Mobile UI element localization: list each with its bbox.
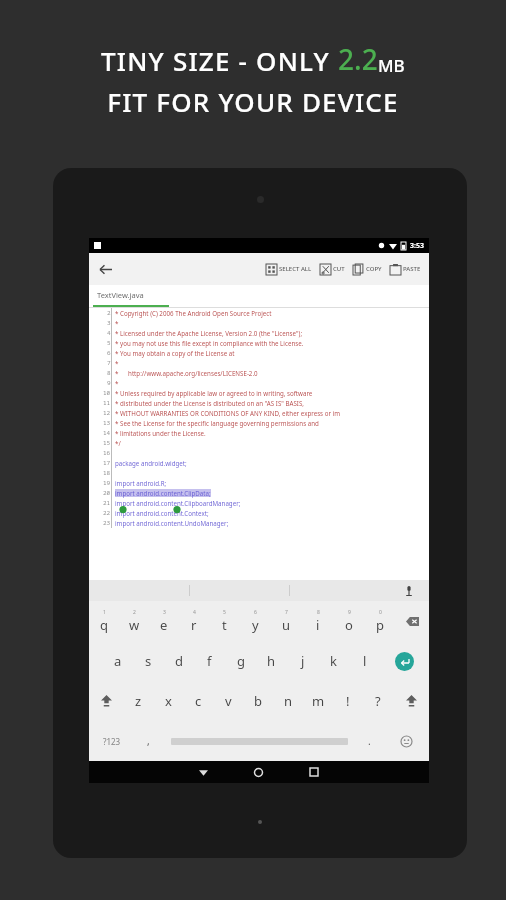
staticText: * distributed under the License is distr… [115, 399, 304, 407]
button[interactable]: Backspace [395, 601, 429, 641]
staticText: FIT FOR YOUR DEVICE [107, 84, 399, 119]
staticText: l [363, 652, 367, 670]
button[interactable]: 3 [149, 601, 179, 641]
button[interactable]: Emoji [384, 721, 429, 761]
button[interactable]: Enter [380, 641, 429, 681]
button[interactable]: 6 [240, 601, 271, 641]
staticText: 9 [348, 609, 351, 616]
staticText: * you may not use this file except in co… [115, 339, 304, 347]
staticText: 16 [103, 449, 111, 457]
button[interactable]: n [273, 681, 303, 721]
button[interactable]: d [163, 641, 194, 681]
button[interactable]: , [134, 721, 163, 761]
staticText: 14 [103, 429, 111, 437]
button[interactable]: Shift [393, 681, 429, 721]
button[interactable]: Home [231, 761, 286, 783]
button[interactable]: s [133, 641, 163, 681]
staticText: 6 [107, 349, 111, 357]
staticText: 9 [107, 379, 111, 387]
button[interactable]: x [153, 681, 183, 721]
staticText: 17 [103, 459, 111, 467]
staticText: y [252, 616, 259, 634]
button[interactable]: 0 [364, 601, 395, 641]
staticText: COPY [366, 265, 382, 273]
staticText: . [368, 734, 371, 748]
staticText: 13 [103, 419, 111, 427]
staticText: k [330, 652, 337, 670]
button[interactable]: 4 [179, 601, 209, 641]
button[interactable]: 8 [302, 601, 333, 641]
staticText: n [284, 692, 293, 710]
staticText: * Unless required by applicable law or a… [115, 389, 313, 397]
button[interactable]: Recent apps [286, 761, 341, 783]
staticText: */ [115, 439, 121, 447]
staticText: 5 [223, 609, 226, 616]
staticText: 2 [133, 609, 136, 616]
staticText: 2.2 [338, 40, 378, 78]
staticText: ?123 [103, 736, 121, 747]
button[interactable]: c [183, 681, 213, 721]
button[interactable]: Back [89, 253, 121, 285]
button[interactable]: f [194, 641, 225, 681]
button[interactable]: 7 [271, 601, 302, 641]
staticText: m [312, 692, 325, 710]
staticText: 3 [163, 609, 166, 616]
staticText: v [225, 692, 232, 710]
staticText: package android.widget; [115, 459, 187, 467]
button[interactable]: a [103, 641, 133, 681]
button[interactable]: SELECT ALL [262, 253, 316, 285]
button[interactable]: m [303, 681, 333, 721]
button[interactable]: TextView.java [89, 285, 144, 305]
staticText: * [115, 319, 119, 327]
button[interactable]: Back [176, 761, 231, 783]
staticText: MB [378, 54, 405, 77]
staticText: 22 [103, 509, 111, 517]
button[interactable]: k [318, 641, 349, 681]
button[interactable]: ? [363, 681, 393, 721]
button[interactable]: 5 [209, 601, 240, 641]
button[interactable]: ! [333, 681, 363, 721]
staticText: j [301, 652, 305, 670]
button[interactable]: Shift [89, 681, 124, 721]
staticText: 18 [103, 469, 111, 477]
button[interactable]: Voice input [389, 580, 429, 601]
button[interactable]: v [213, 681, 243, 721]
button[interactable]: Space [163, 721, 355, 761]
staticText: 1 [103, 609, 106, 616]
staticText: 21 [103, 499, 111, 507]
button[interactable]: ?123 [89, 721, 134, 761]
staticText: 11 [103, 399, 111, 407]
button[interactable]: j [287, 641, 318, 681]
staticText: 19 [103, 479, 111, 487]
button[interactable]: l [349, 641, 380, 681]
button[interactable]: 2 [119, 601, 149, 641]
staticText: u [282, 616, 291, 634]
button[interactable]: h [256, 641, 287, 681]
staticText: a [114, 652, 122, 670]
button[interactable]: COPY [349, 253, 386, 285]
button[interactable]: . [355, 721, 384, 761]
button[interactable]: g [225, 641, 256, 681]
button[interactable]: CUT [316, 253, 349, 285]
staticText: 3 [107, 319, 111, 327]
staticText: t [222, 616, 227, 634]
staticText: * Copyright (C) 2006 The Android Open So… [115, 309, 272, 317]
staticText: o [345, 616, 353, 634]
staticText: ? [375, 692, 381, 710]
staticText: p [376, 616, 384, 634]
staticText: 4 [193, 609, 196, 616]
button[interactable]: PASTE [386, 253, 425, 285]
button[interactable]: 2 [89, 308, 429, 580]
staticText: 3:53 [410, 241, 424, 251]
staticText: 12 [103, 409, 111, 417]
staticText: c [195, 692, 202, 710]
button[interactable]: b [243, 681, 273, 721]
button[interactable]: 1 [89, 601, 119, 641]
button[interactable]: z [124, 681, 153, 721]
staticText: * [115, 379, 119, 387]
staticText: import android.content.ClipboardManager; [115, 499, 241, 507]
button[interactable]: 9 [333, 601, 364, 641]
